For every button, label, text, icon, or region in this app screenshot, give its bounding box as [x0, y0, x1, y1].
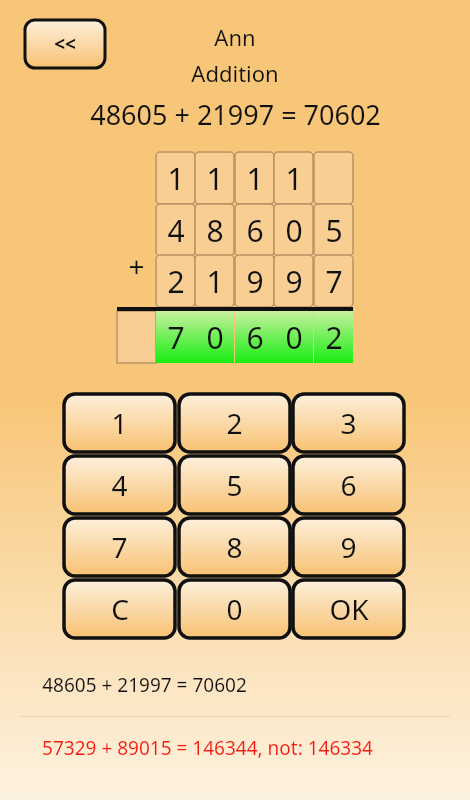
staticText: 3	[340, 404, 357, 442]
button[interactable]: 2	[314, 311, 353, 363]
button[interactable]: 6	[293, 456, 404, 514]
staticText: 48605 + 21997 = 70602	[42, 672, 247, 698]
staticText: 5	[226, 466, 243, 504]
staticText: 0	[285, 210, 303, 251]
staticText: C	[111, 590, 129, 628]
button[interactable]: 7	[156, 311, 195, 363]
staticText: 1	[167, 158, 185, 199]
staticText: 0	[285, 317, 303, 358]
button[interactable]: 8	[179, 518, 290, 576]
staticText: 4	[111, 466, 128, 504]
button[interactable]: 6	[235, 204, 274, 256]
staticText: 0	[206, 317, 224, 358]
button[interactable]: Back	[25, 20, 105, 68]
button[interactable]: 0	[274, 311, 313, 363]
button[interactable]: OK	[293, 580, 404, 638]
button[interactable]: 4	[64, 456, 175, 514]
button[interactable]: 6	[235, 311, 274, 363]
button[interactable]: 0	[195, 311, 234, 363]
button[interactable]: 4	[156, 204, 195, 256]
staticText: 8	[206, 210, 224, 251]
button[interactable]: 1	[156, 152, 195, 204]
button[interactable]: 9	[293, 518, 404, 576]
staticText: 0	[226, 590, 243, 628]
button[interactable]: 1	[195, 152, 234, 204]
button[interactable]: 0	[274, 204, 313, 256]
staticText: 57329 + 89015 = 146344, not: 146334	[42, 735, 373, 761]
staticText: 6	[246, 210, 264, 251]
staticText: +	[128, 247, 145, 285]
staticText: 6	[340, 466, 357, 504]
staticText: 1	[206, 261, 224, 302]
button[interactable]	[314, 152, 353, 204]
button[interactable]: 1	[195, 255, 234, 307]
staticText: 1	[206, 158, 224, 199]
staticText: 2	[325, 317, 343, 358]
button[interactable]: C	[64, 580, 175, 638]
button[interactable]: 9	[274, 255, 313, 307]
staticText: Addition	[191, 58, 279, 88]
staticText: 1	[285, 158, 303, 199]
staticText: 7	[167, 317, 185, 358]
staticText: 7	[111, 528, 128, 566]
button[interactable]: 3	[293, 394, 404, 452]
staticText: 4	[167, 210, 185, 251]
staticText: OK	[329, 590, 369, 628]
staticText: 5	[325, 210, 343, 251]
staticText: 9	[340, 528, 357, 566]
button[interactable]: 5	[179, 456, 290, 514]
staticText: 2	[226, 404, 243, 442]
staticText: Ann	[214, 22, 256, 52]
button[interactable]: 0	[179, 580, 290, 638]
button[interactable]: 9	[235, 255, 274, 307]
button[interactable]: 1	[235, 152, 274, 204]
staticText: <<	[54, 31, 76, 57]
staticText: 9	[285, 261, 303, 302]
button[interactable]: 1	[64, 394, 175, 452]
staticText: 8	[226, 528, 243, 566]
button[interactable]: 1	[274, 152, 313, 204]
button[interactable]: 7	[314, 255, 353, 307]
staticText: 9	[246, 261, 264, 302]
button[interactable]: 2	[156, 255, 195, 307]
staticText: 48605 + 21997 = 70602	[90, 96, 381, 133]
button[interactable]: 7	[64, 518, 175, 576]
staticText: 6	[246, 317, 264, 358]
staticText: 7	[325, 261, 343, 302]
staticText: 1	[111, 404, 128, 442]
staticText: 1	[246, 158, 264, 199]
button[interactable]: 8	[195, 204, 234, 256]
button[interactable]: 2	[179, 394, 290, 452]
staticText: 2	[167, 261, 185, 302]
button[interactable]: 5	[314, 204, 353, 256]
